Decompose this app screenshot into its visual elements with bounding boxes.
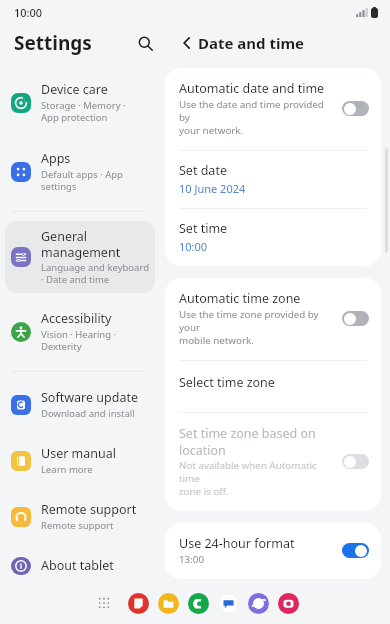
- button[interactable]: Internet: [248, 593, 269, 614]
- button[interactable]: Remote support: [5, 494, 155, 539]
- button[interactable]: Device care: [5, 74, 155, 131]
- staticText: Learn more: [41, 463, 93, 476]
- button[interactable]: Accessibility: [5, 303, 155, 360]
- staticText: Set time: [179, 220, 228, 237]
- staticText: 10:00: [14, 5, 43, 20]
- staticText: Set date: [179, 162, 227, 179]
- staticText: Accessibility: [41, 310, 112, 327]
- staticText: 13:00: [179, 553, 205, 566]
- button[interactable]: Toggle: [342, 454, 369, 469]
- staticText: Automatic date and time: [179, 80, 325, 97]
- button[interactable]: Back: [172, 28, 202, 58]
- button[interactable]: Automatic time zone: [165, 278, 381, 360]
- staticText: Use 24-hour format: [179, 535, 295, 552]
- button[interactable]: Toggle: [342, 101, 369, 116]
- button[interactable]: Messages: [218, 593, 239, 614]
- button[interactable]: All apps: [91, 590, 117, 616]
- staticText: Software update: [41, 389, 138, 406]
- button[interactable]: Apps: [5, 143, 155, 200]
- staticText: General management: [41, 228, 121, 260]
- button[interactable]: Camera: [278, 593, 299, 614]
- button[interactable]: Notes: [128, 593, 149, 614]
- staticText: 10 June 2024: [179, 181, 246, 196]
- staticText: Default apps · App settings: [41, 168, 123, 193]
- staticText: Language and keyboard · Date and time: [41, 261, 149, 286]
- staticText: About tablet: [41, 557, 114, 574]
- staticText: Download and install: [41, 407, 135, 420]
- button[interactable]: Phone: [188, 593, 209, 614]
- button[interactable]: Toggle: [342, 543, 369, 558]
- button[interactable]: Set time: [165, 209, 381, 266]
- staticText: Settings: [14, 30, 92, 56]
- staticText: Automatic time zone: [179, 290, 301, 307]
- button[interactable]: Set time zone based on location: [165, 413, 381, 511]
- staticText: 10:00: [179, 239, 208, 254]
- button[interactable]: Automatic date and time: [165, 68, 381, 150]
- button[interactable]: General management: [5, 221, 155, 293]
- staticText: Date and time: [198, 33, 305, 53]
- button[interactable]: Set date: [165, 151, 381, 208]
- button[interactable]: About tablet: [5, 550, 155, 582]
- button[interactable]: Software update: [5, 382, 155, 427]
- button[interactable]: User manual: [5, 438, 155, 483]
- staticText: Apps: [41, 150, 71, 167]
- staticText: Not available when Automatic time zone i…: [179, 459, 334, 498]
- staticText: Device care: [41, 81, 108, 98]
- button[interactable]: Search: [130, 28, 160, 58]
- staticText: Select time zone: [179, 374, 275, 391]
- button[interactable]: Toggle: [342, 311, 369, 326]
- staticText: Remote support: [41, 501, 137, 518]
- staticText: Remote support: [41, 519, 114, 532]
- staticText: User manual: [41, 445, 116, 462]
- button[interactable]: My Files: [158, 593, 179, 614]
- staticText: Storage · Memory · App protection: [41, 99, 126, 124]
- button[interactable]: Use 24-hour format: [165, 523, 381, 579]
- staticText: Vision · Hearing · Dexterity: [41, 328, 117, 353]
- staticText: Set time zone based on location: [179, 425, 316, 458]
- button[interactable]: Select time zone: [165, 361, 381, 412]
- staticText: Use the date and time provided by your n…: [179, 98, 334, 137]
- staticText: Use the time zone provided by your mobil…: [179, 308, 334, 347]
